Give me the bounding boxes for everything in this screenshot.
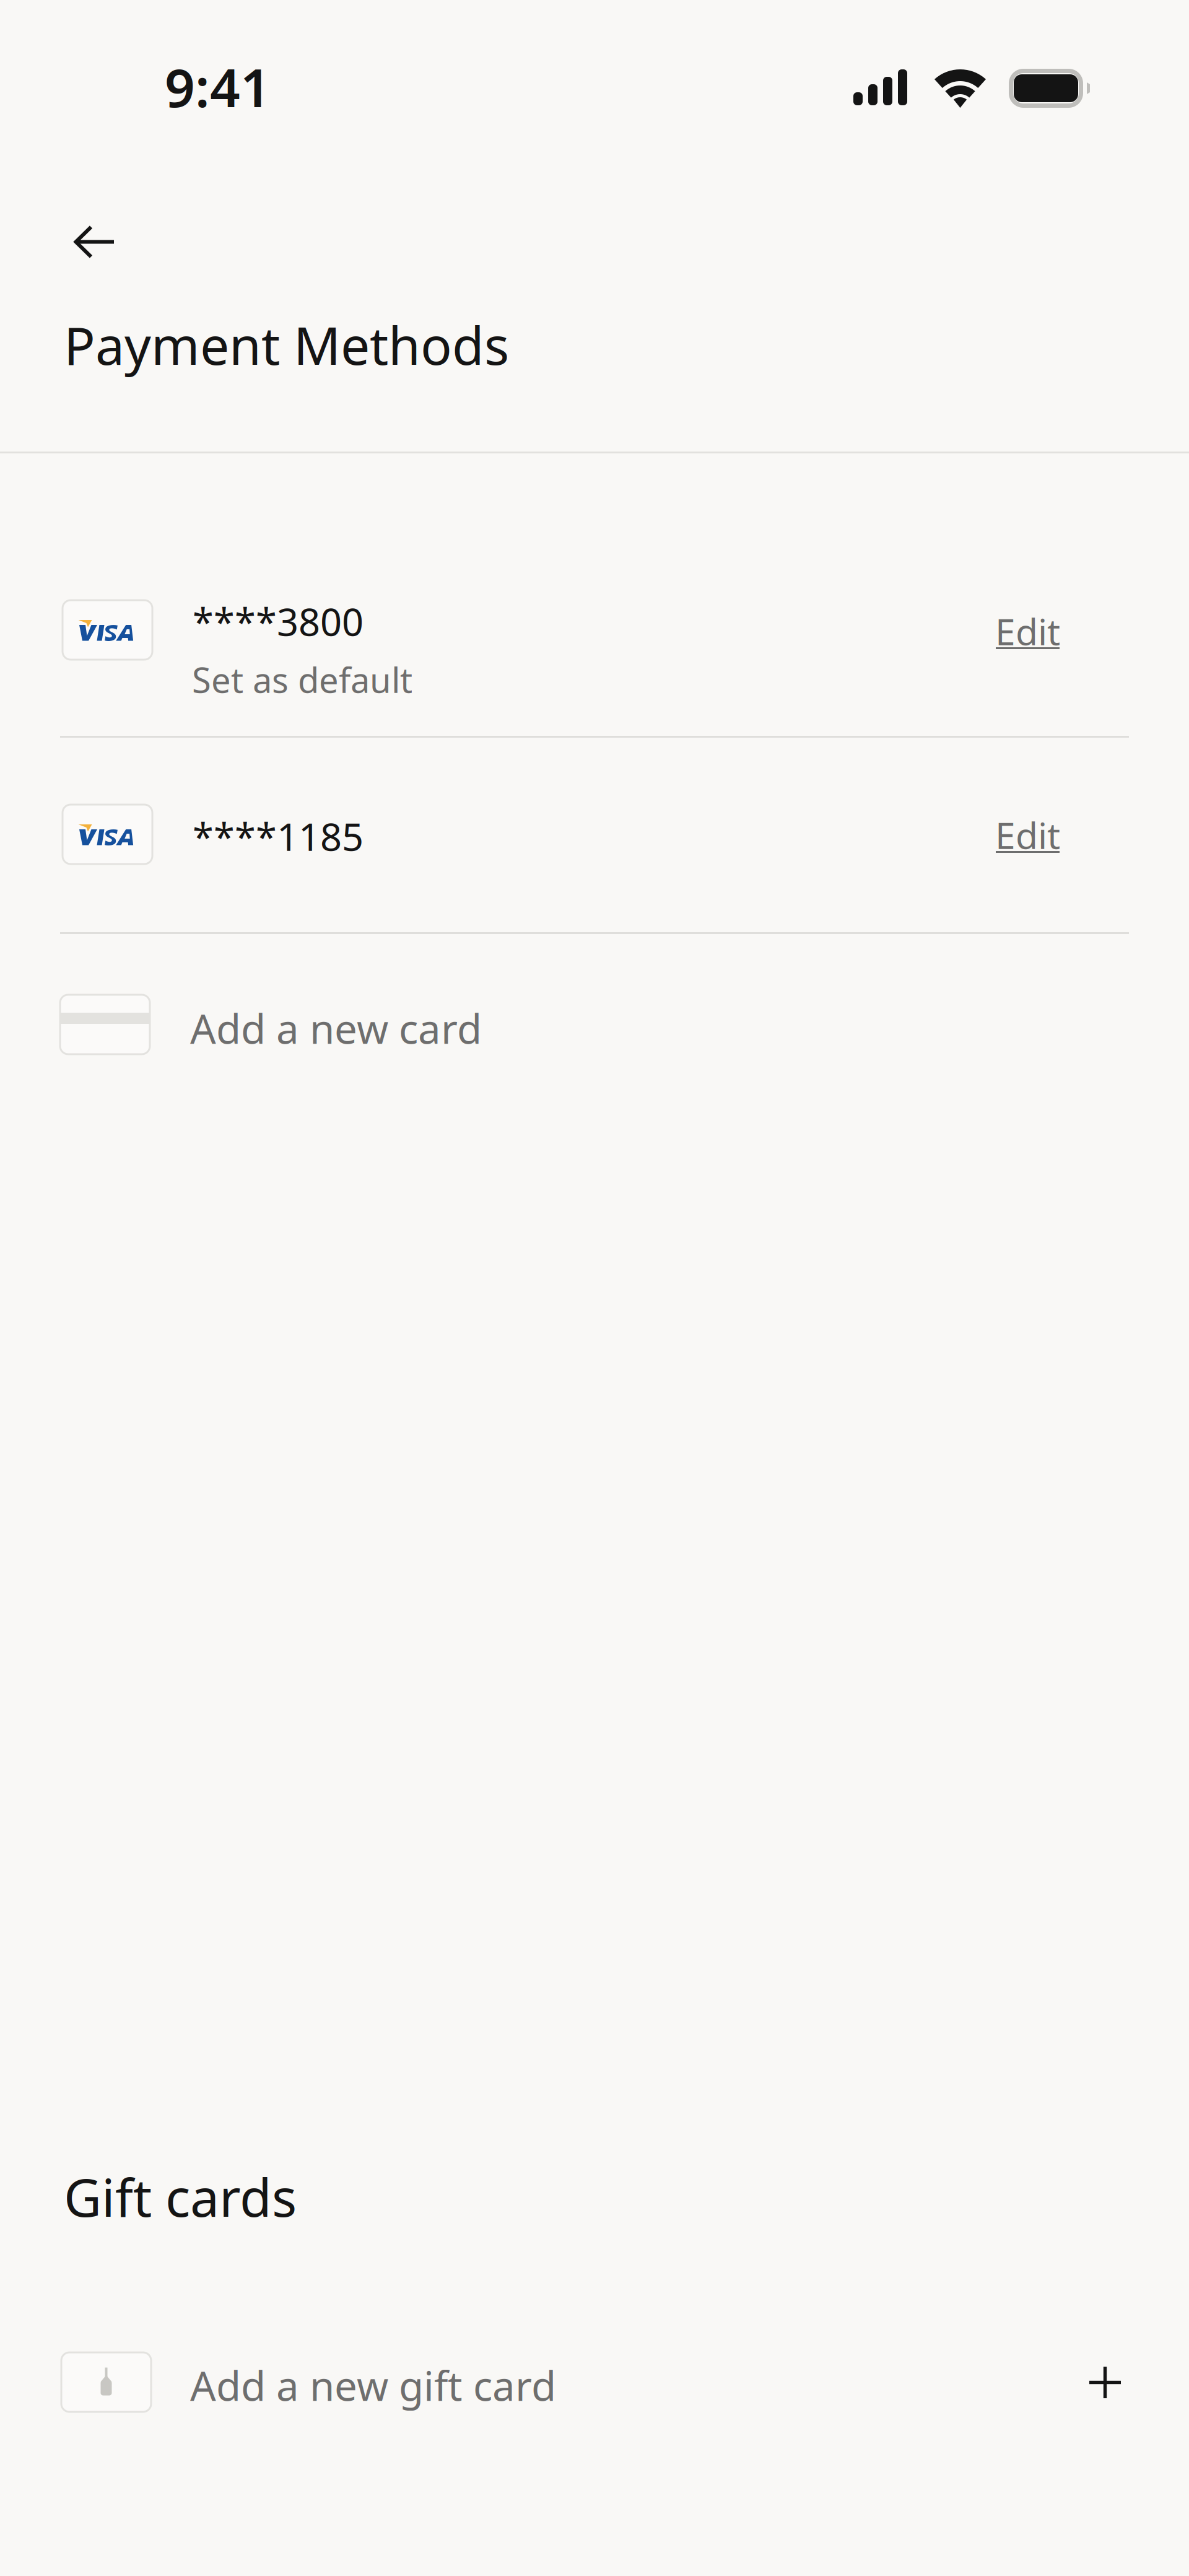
staticText: 9:41 xyxy=(165,52,271,122)
button[interactable]: Edit xyxy=(996,607,1060,649)
staticText: Payment Methods xyxy=(64,310,509,379)
staticText: Gift cards xyxy=(64,2162,297,2231)
staticText: Add a new card xyxy=(190,1001,482,1055)
staticText: Edit xyxy=(995,811,1060,859)
button[interactable]: ****3800 xyxy=(63,600,1128,735)
staticText: ****3800 xyxy=(193,596,364,646)
staticText: Edit xyxy=(995,607,1060,655)
button[interactable]: Add a new gift card xyxy=(1076,2353,1135,2412)
button[interactable]: Edit xyxy=(996,811,1060,853)
staticText: ****1185 xyxy=(193,811,364,861)
button[interactable]: Add a new card xyxy=(60,995,1125,1054)
button[interactable]: Back xyxy=(56,207,132,277)
staticText: Add a new gift card xyxy=(190,2358,556,2412)
staticText: Set as default xyxy=(192,656,412,703)
button[interactable]: Add a new gift card xyxy=(61,2352,1040,2412)
button[interactable]: ****1185 xyxy=(63,805,1128,888)
